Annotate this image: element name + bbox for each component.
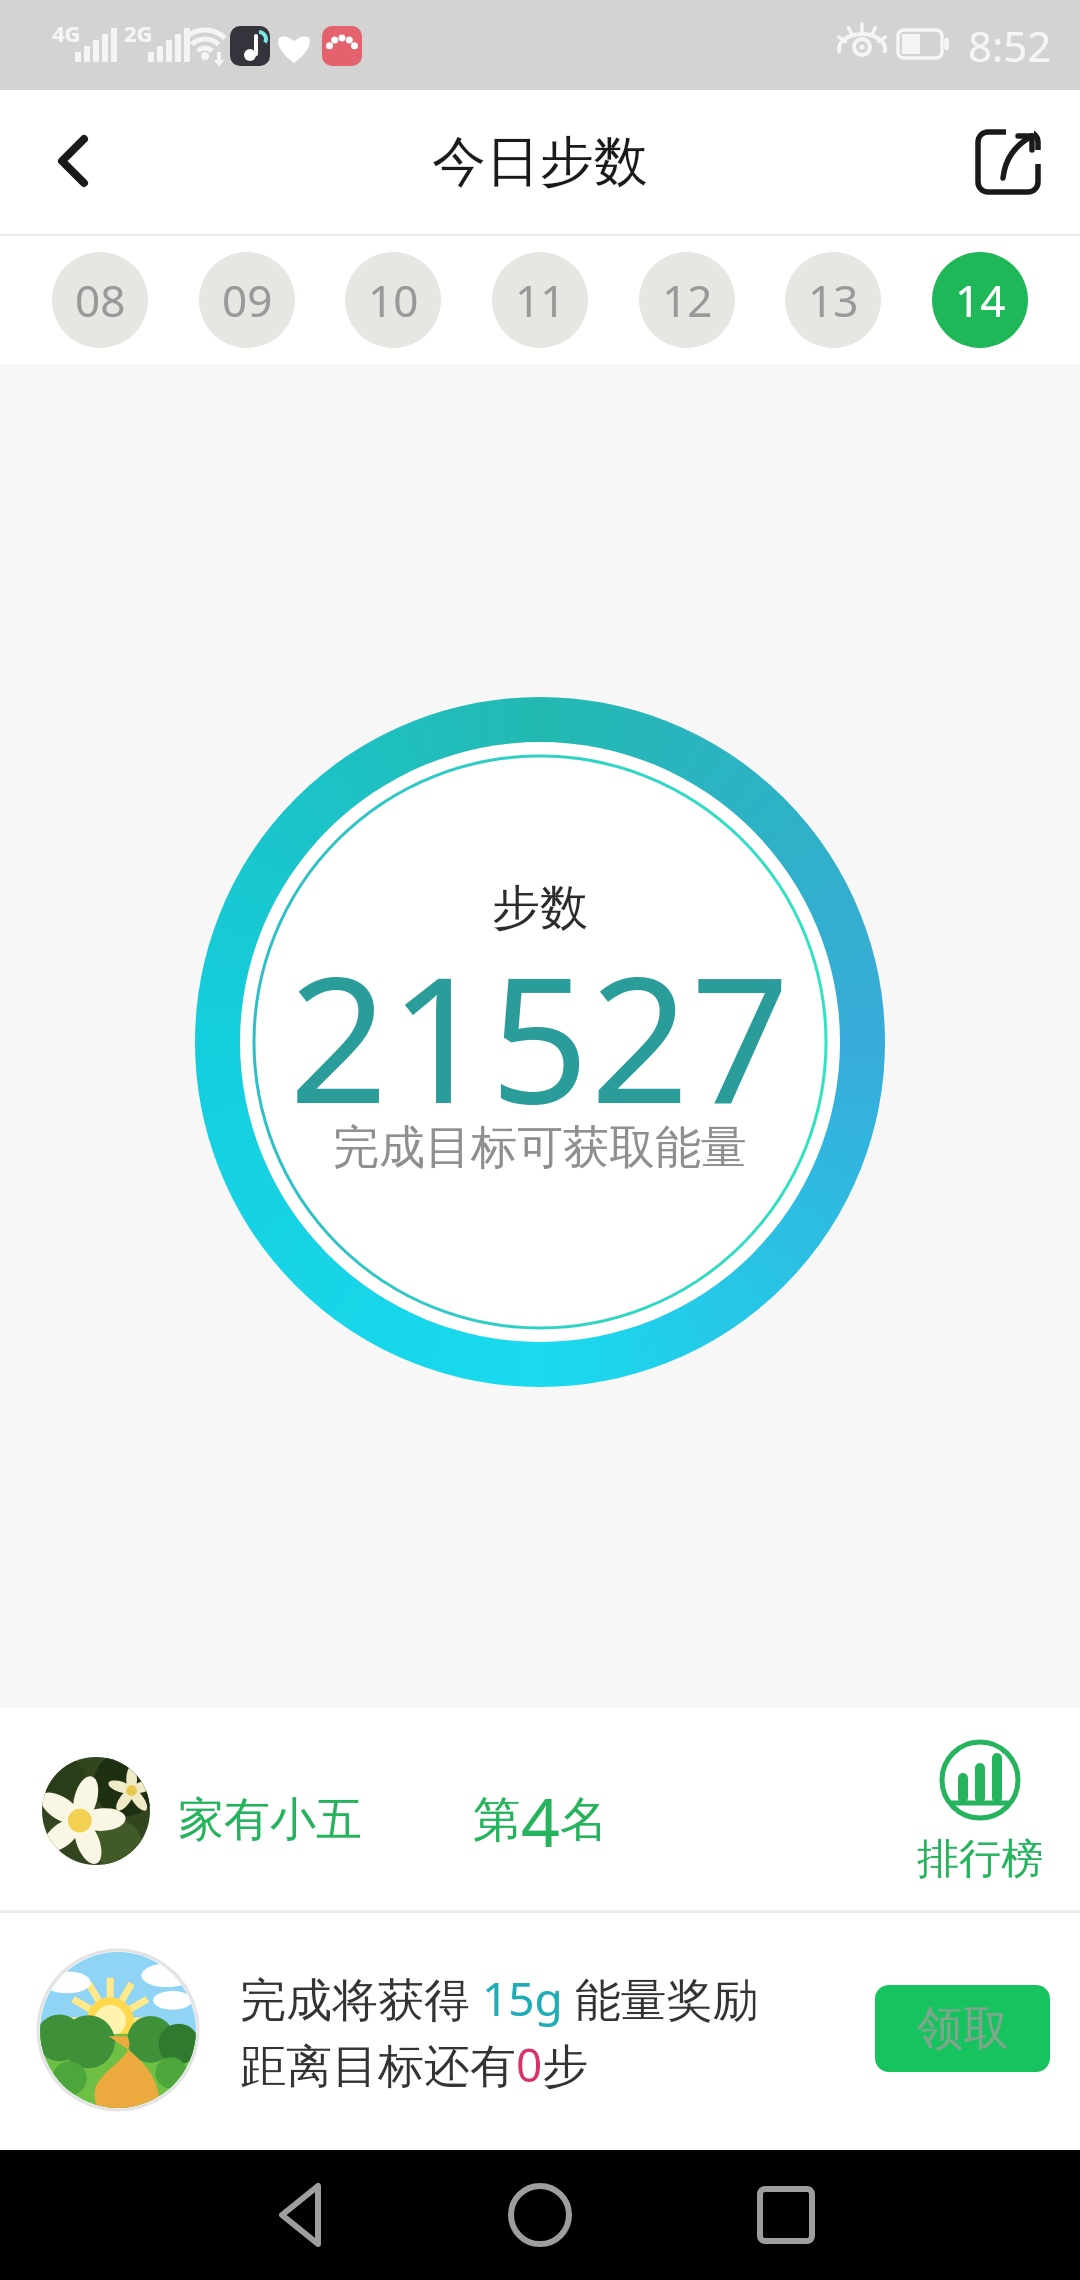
button[interactable]: 09 [199,252,295,348]
button[interactable] [711,2150,861,2280]
staticText: 13 [808,270,859,330]
staticText: 排行榜 [917,1833,1043,1886]
button[interactable] [30,110,130,214]
staticText: 12 [662,270,713,330]
button[interactable]: 11 [492,252,588,348]
button[interactable]: 12 [639,252,735,348]
staticText: 完成目标可获取能量 [333,1119,747,1177]
staticText: 09 [222,270,273,330]
staticText: 8:52 [968,17,1052,74]
staticText: 08 [75,270,126,330]
button[interactable]: 14 [932,252,1028,348]
staticText: 4G [52,18,81,48]
staticText: 14 [955,270,1006,330]
staticText: 步数 [492,878,588,938]
staticText: 第 [473,1790,521,1850]
button[interactable]: 领取 [875,1985,1050,2072]
button[interactable] [231,2150,381,2280]
staticText: 家有小五 [178,1791,362,1849]
button[interactable] [948,110,1068,214]
button[interactable] [465,2150,615,2280]
button[interactable]: 10 [345,252,441,348]
staticText: 2G [124,18,153,48]
staticText: 距离目标还有0步 [240,2033,589,2096]
button[interactable]: 08 [52,252,148,348]
button[interactable]: 家有小五 [0,1708,1080,1910]
staticText: 10 [368,270,419,330]
staticText: 领取 [917,2000,1009,2058]
button[interactable]: 13 [785,252,881,348]
staticText: 21527 [289,918,792,1138]
staticText: 名 [560,1790,608,1850]
staticText: 完成将获得 15g 能量奖励 [240,1967,759,2030]
staticText: 11 [515,270,566,330]
button[interactable]: 排行榜 [900,1824,1060,1894]
staticText: 4 [521,1774,560,1867]
staticText: 今日步数 [432,128,648,196]
